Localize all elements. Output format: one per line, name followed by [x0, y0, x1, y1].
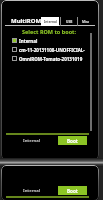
staticText: Select ROM to boot: [22, 28, 77, 35]
staticText: cm-11-20131108-UNOFFICIAL- [19, 47, 85, 53]
button[interactable]: Internal [41, 17, 59, 26]
button[interactable]: Boot [58, 186, 87, 195]
button[interactable]: Internal [22, 137, 42, 145]
staticText: MultiROM [11, 17, 42, 25]
staticText: Internal [19, 38, 38, 44]
staticText: OmniROM-Tomato-20131019 [19, 56, 83, 62]
staticText: Boot [67, 188, 78, 194]
staticText: Boot [67, 138, 78, 144]
button[interactable]: USB [61, 17, 77, 26]
button[interactable]: Misc [78, 17, 94, 26]
button[interactable]: Internal [22, 187, 42, 195]
staticText: Internal [44, 20, 57, 24]
staticText: Internal [23, 138, 41, 144]
button[interactable]: Boot [58, 136, 87, 145]
staticText: USB [66, 20, 73, 24]
button[interactable]: OmniROM-Tomato-20131019 [1, 54, 99, 63]
staticText: Misc [82, 20, 90, 24]
button[interactable]: cm-11-20131108-UNOFFICIAL- [1, 45, 99, 54]
button[interactable]: Internal [1, 36, 99, 45]
staticText: Internal [23, 188, 41, 194]
